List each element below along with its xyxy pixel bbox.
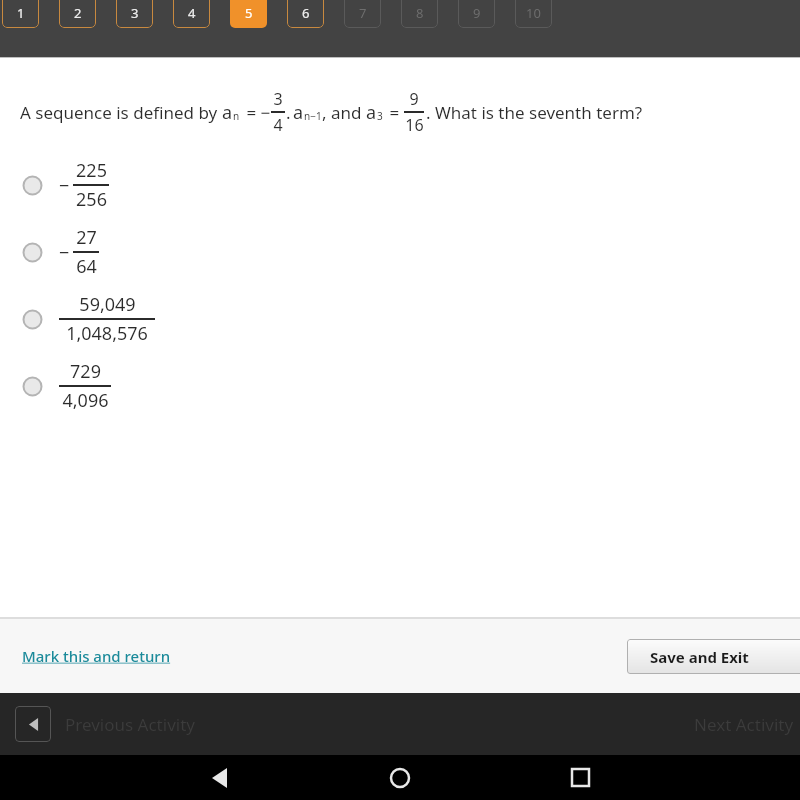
- staticText: .: [286, 101, 291, 124]
- staticText: 1: [17, 4, 25, 22]
- staticText: 59,049: [79, 292, 136, 317]
- staticText: 9: [473, 4, 481, 22]
- button[interactable]: 3: [116, 0, 153, 28]
- staticText: 1,048,576: [66, 321, 148, 346]
- staticText: 3: [377, 109, 383, 123]
- staticText: =: [385, 101, 404, 124]
- staticText: 3: [273, 88, 283, 110]
- staticText: 16: [405, 114, 424, 136]
- staticText: 225: [76, 158, 107, 183]
- button[interactable]: −: [22, 158, 780, 212]
- staticText: a: [366, 100, 377, 125]
- staticText: n: [233, 109, 240, 123]
- staticText: 64: [76, 254, 97, 279]
- staticText: 5: [245, 4, 253, 22]
- button[interactable]: 2: [59, 0, 96, 28]
- button[interactable]: Home: [310, 755, 490, 800]
- staticText: n−1: [304, 109, 322, 123]
- staticText: = −: [242, 101, 271, 124]
- button[interactable]: 729: [22, 359, 780, 413]
- button[interactable]: −: [22, 225, 780, 279]
- button[interactable]: 5: [230, 0, 267, 28]
- button[interactable]: 59,049: [22, 292, 780, 346]
- staticText: 7: [359, 4, 367, 22]
- staticText: . What is the seventh term?: [426, 101, 643, 124]
- button[interactable]: Previous Activity: [15, 706, 51, 742]
- staticText: 2: [74, 4, 82, 22]
- staticText: a: [222, 100, 233, 125]
- staticText: 27: [76, 225, 97, 250]
- staticText: −: [59, 240, 70, 265]
- button[interactable]: Previous Activity: [65, 713, 195, 736]
- staticText: 4: [273, 114, 283, 136]
- staticText: 729: [70, 359, 101, 384]
- staticText: , and: [322, 101, 366, 124]
- button[interactable]: 7: [344, 0, 381, 28]
- button[interactable]: 9: [458, 0, 495, 28]
- button[interactable]: Back: [130, 755, 310, 800]
- staticText: 4,096: [62, 388, 109, 413]
- staticText: a: [293, 100, 304, 125]
- staticText: A sequence is defined by: [20, 101, 222, 124]
- staticText: 6: [302, 4, 310, 22]
- button[interactable]: 10: [515, 0, 552, 28]
- staticText: 8: [416, 4, 424, 22]
- staticText: 3: [131, 4, 139, 22]
- staticText: Save and Exit: [650, 647, 749, 667]
- button[interactable]: Mark this and return: [22, 646, 171, 666]
- button[interactable]: 4: [173, 0, 210, 28]
- staticText: 4: [188, 4, 196, 22]
- button[interactable]: Next Activity: [694, 713, 794, 736]
- button[interactable]: Recent apps: [490, 755, 670, 800]
- button[interactable]: Save and Exit: [627, 639, 800, 674]
- staticText: −: [59, 173, 70, 198]
- staticText: 10: [526, 4, 541, 22]
- button[interactable]: 8: [401, 0, 438, 28]
- button[interactable]: 6: [287, 0, 324, 28]
- button[interactable]: 1: [2, 0, 39, 28]
- staticText: 256: [76, 187, 107, 212]
- staticText: 9: [409, 88, 419, 110]
